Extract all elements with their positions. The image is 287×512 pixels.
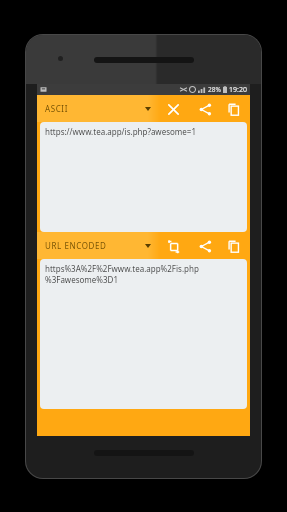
button[interactable]: URL ENCODED [45, 232, 140, 259]
staticText: 19:20 [229, 85, 247, 95]
staticText: ASCII [45, 103, 68, 114]
button[interactable]: https://www.tea.app/is.php?awesome=1 [40, 122, 247, 232]
button[interactable]: Clear [162, 98, 184, 120]
staticText: %3Fawesome%3D1 [45, 274, 118, 285]
button[interactable]: Share [194, 98, 216, 120]
button[interactable]: Transform [162, 235, 184, 257]
button[interactable]: Share [194, 235, 216, 257]
button[interactable]: ASCII [45, 95, 140, 122]
button[interactable]: Copy [222, 235, 244, 257]
button[interactable]: Copy [222, 98, 244, 120]
button[interactable]: Select format [140, 235, 156, 257]
staticText: https%3A%2F%2Fwww.tea.app%2Fis.php [45, 263, 199, 274]
staticText: 28% [208, 85, 221, 94]
button[interactable]: https%3A%2F%2Fwww.tea.app%2Fis.php [40, 259, 247, 409]
staticText: URL ENCODED [45, 240, 107, 251]
button[interactable]: Select format [140, 98, 156, 120]
staticText: https://www.tea.app/is.php?awesome=1 [45, 126, 196, 137]
